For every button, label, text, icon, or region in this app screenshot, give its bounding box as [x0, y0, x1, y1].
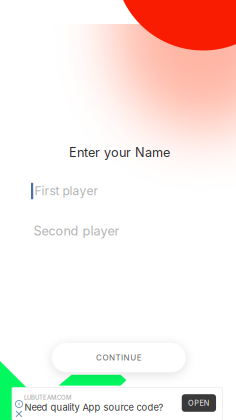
button[interactable]: OPEN — [182, 394, 216, 412]
staticText: OPEN — [188, 399, 210, 407]
staticText: LUBUTEAM.COM — [24, 394, 71, 401]
staticText: Need quality App source code? — [24, 402, 163, 413]
staticText: CONTINUE — [96, 353, 142, 362]
staticText: Second player — [33, 223, 119, 239]
staticText: Enter your Name — [69, 145, 170, 160]
button[interactable]: First player — [0, 176, 236, 206]
staticText: First player — [35, 184, 99, 198]
button[interactable]: Second player — [0, 216, 236, 246]
button[interactable]: CONTINUE — [52, 343, 186, 372]
